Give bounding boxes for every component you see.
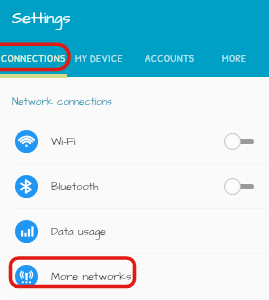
- staticText: Network connections: [12, 95, 112, 109]
- button[interactable]: Toggle: [224, 133, 254, 150]
- staticText: More networks: [51, 269, 132, 284]
- button[interactable]: MORE: [222, 47, 247, 69]
- staticText: Wi-Fi: [51, 134, 76, 149]
- button[interactable]: Data usage: [0, 209, 269, 253]
- staticText: ACCOUNTS: [145, 51, 195, 66]
- button[interactable]: More networks: [0, 254, 269, 298]
- staticText: MORE: [222, 51, 247, 66]
- staticText: Bluetooth: [51, 179, 99, 194]
- button[interactable]: Bluetooth: [0, 164, 269, 208]
- button[interactable]: ACCOUNTS: [145, 47, 195, 69]
- staticText: Data usage: [51, 224, 107, 239]
- staticText: MY DEVICE: [75, 51, 123, 66]
- staticText: CONNECTIONS: [1, 51, 66, 66]
- button[interactable]: CONNECTIONS: [1, 47, 66, 69]
- button[interactable]: MY DEVICE: [75, 47, 123, 69]
- button[interactable]: Toggle: [224, 178, 254, 195]
- button[interactable]: Wi-Fi: [0, 119, 269, 163]
- staticText: Settings: [12, 7, 71, 29]
